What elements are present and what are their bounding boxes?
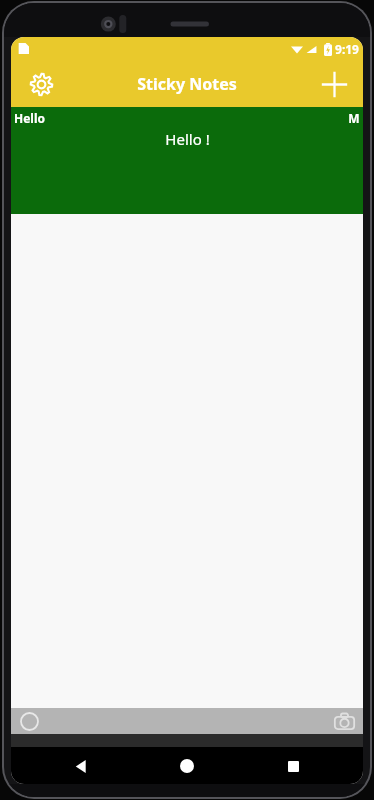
button[interactable]: Assistant: [18, 710, 40, 732]
staticText: Hello !: [165, 129, 210, 149]
staticText: Hello: [14, 110, 45, 126]
button[interactable]: Back: [63, 748, 99, 784]
button[interactable]: Recent apps: [275, 748, 311, 784]
button[interactable]: Home: [169, 748, 205, 784]
button[interactable]: Settings: [22, 65, 60, 103]
staticText: 9:19: [335, 41, 359, 57]
staticText: M: [348, 110, 360, 126]
button[interactable]: Camera: [332, 709, 356, 733]
button[interactable]: Add note: [314, 64, 354, 104]
button[interactable]: Hello: [11, 107, 363, 214]
staticText: Sticky Notes: [137, 73, 237, 95]
